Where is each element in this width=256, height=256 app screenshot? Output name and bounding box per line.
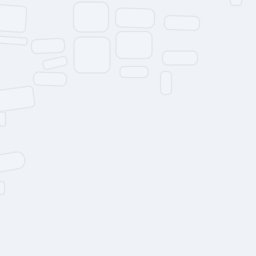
button[interactable]: Placeholder card	[0, 89, 34, 110]
button[interactable]: Placeholder card	[0, 112, 5, 126]
button[interactable]: Placeholder card	[33, 72, 66, 85]
button[interactable]: Placeholder card	[73, 2, 108, 32]
button[interactable]: Placeholder card	[0, 154, 25, 171]
button[interactable]: Placeholder card	[120, 66, 148, 77]
button[interactable]: Placeholder card	[31, 39, 64, 53]
button[interactable]: Placeholder card	[115, 8, 154, 27]
button[interactable]: Placeholder card	[0, 5, 26, 31]
button[interactable]: Placeholder card	[43, 58, 67, 67]
button[interactable]: Placeholder card	[160, 71, 171, 94]
button[interactable]: Placeholder card	[0, 36, 27, 43]
button[interactable]: Placeholder card	[74, 37, 110, 73]
button[interactable]: Placeholder card	[162, 51, 197, 65]
button[interactable]: Placeholder card	[230, 0, 241, 5]
button[interactable]: Placeholder card	[164, 16, 199, 30]
